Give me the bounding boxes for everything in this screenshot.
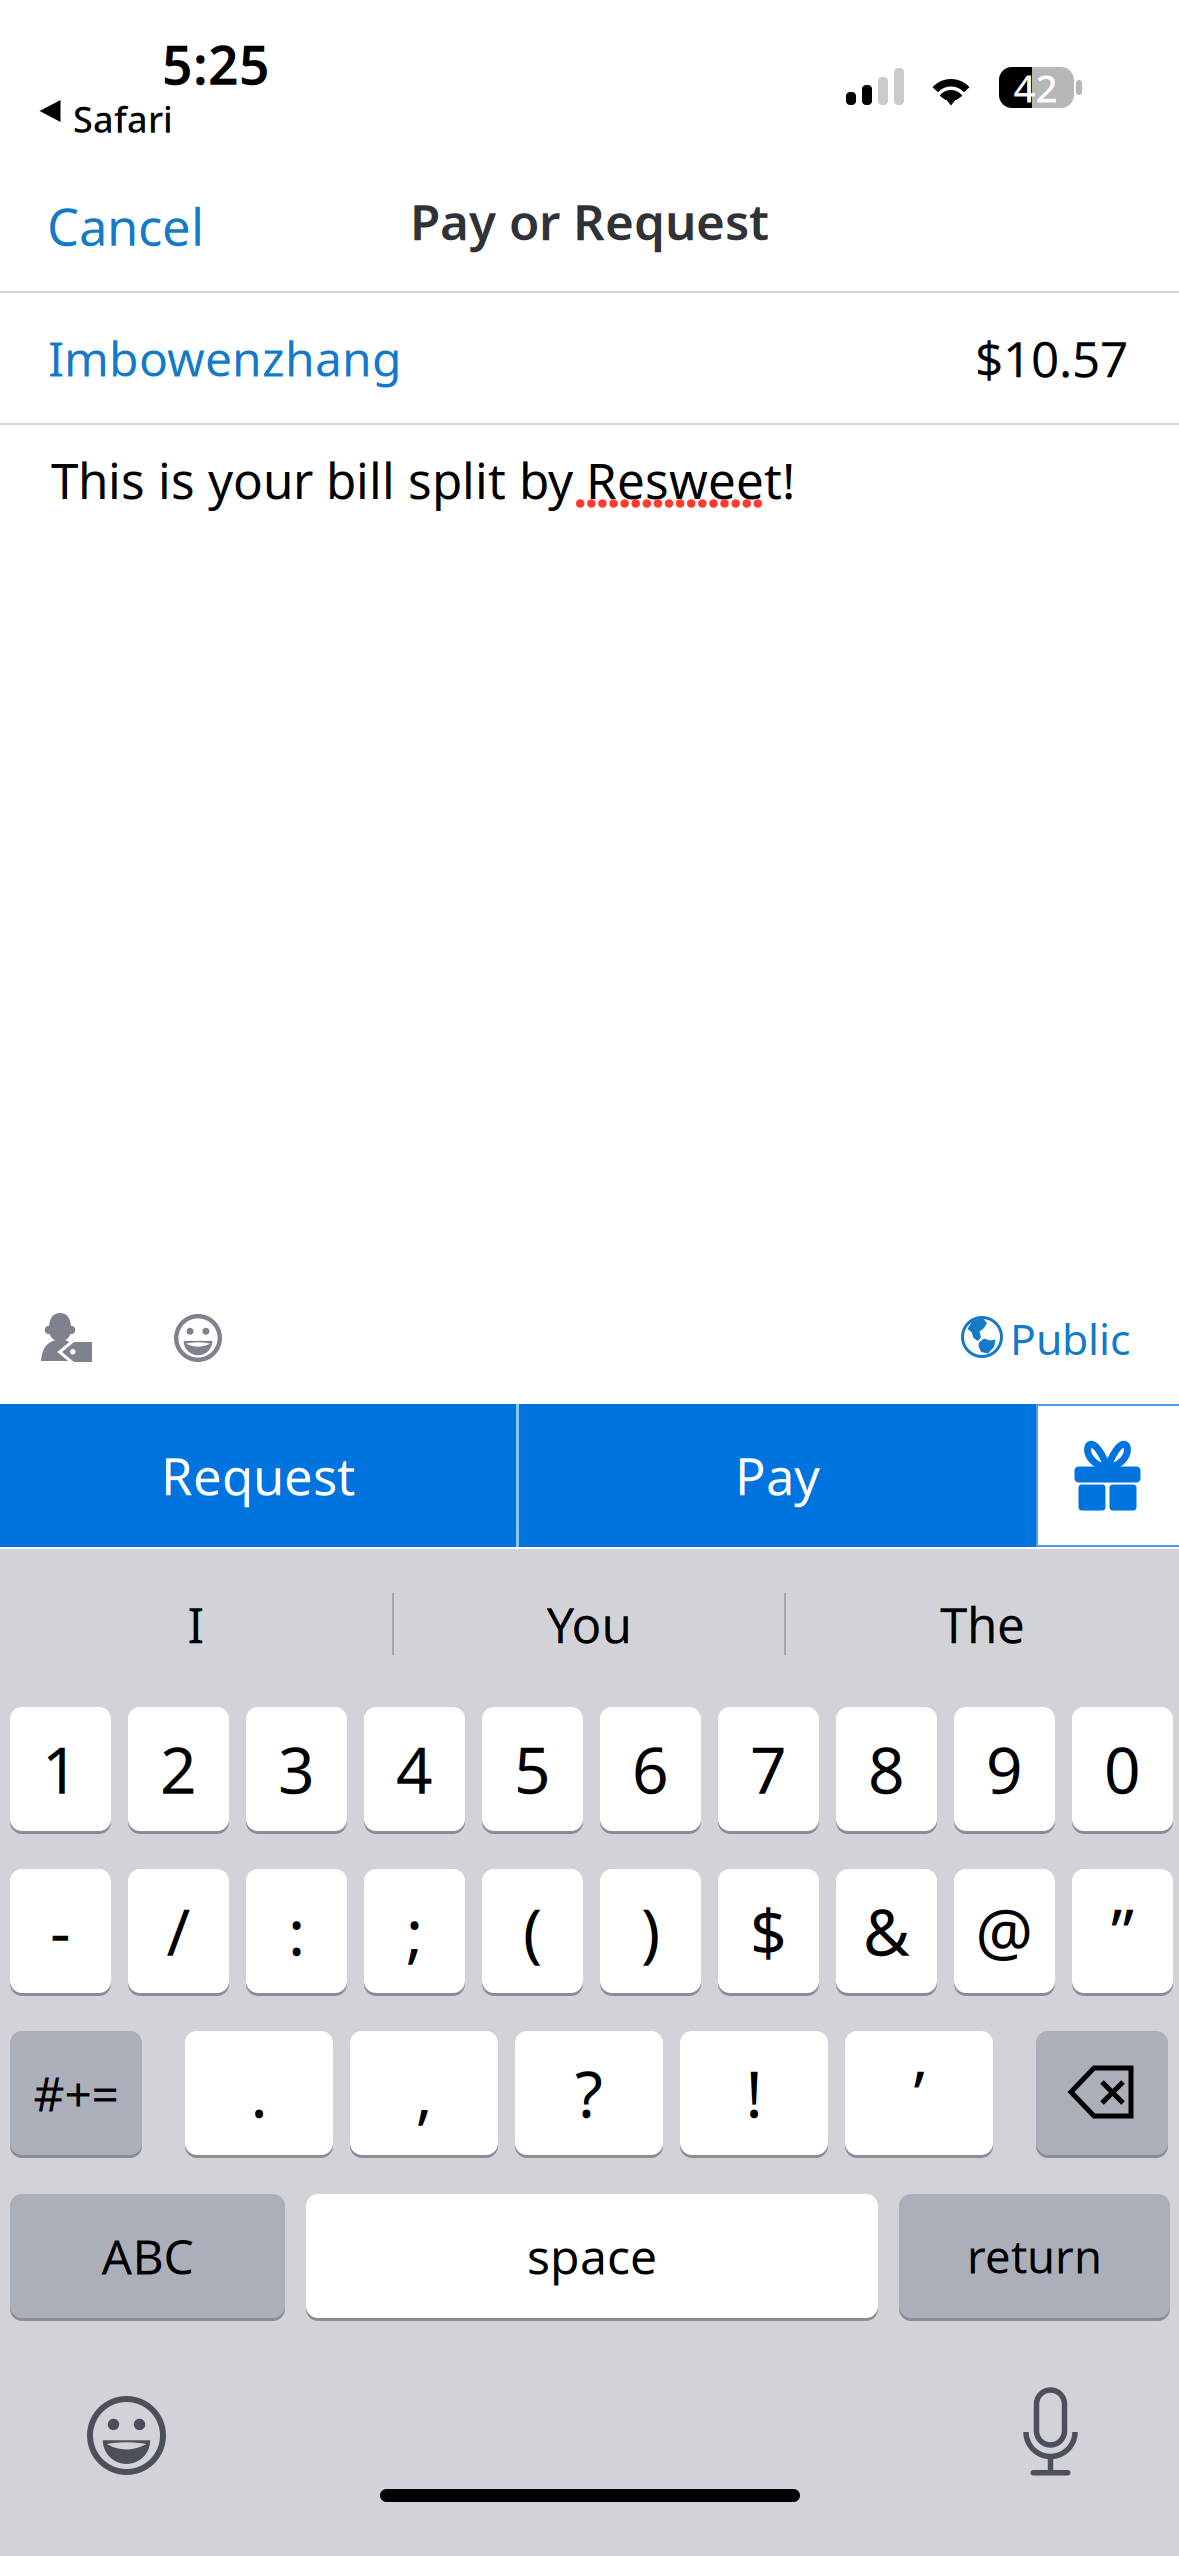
staticText: , bbox=[415, 2050, 432, 2135]
button[interactable]: 6 bbox=[600, 1707, 701, 1834]
staticText: ” bbox=[1111, 1888, 1134, 1973]
button[interactable]: ; bbox=[364, 1869, 465, 1996]
staticText: 5 bbox=[514, 1726, 551, 1811]
button[interactable]: 5 bbox=[482, 1707, 583, 1834]
staticText: The bbox=[940, 1591, 1025, 1657]
staticText: $10.57 bbox=[975, 325, 1128, 391]
button[interactable]: Gift bbox=[1036, 1404, 1179, 1547]
button[interactable]: @ bbox=[954, 1869, 1055, 1996]
staticText: 2 bbox=[160, 1726, 197, 1811]
staticText: ’ bbox=[913, 2050, 924, 2135]
staticText: / bbox=[166, 1888, 190, 1973]
staticText: Public bbox=[1010, 1310, 1130, 1367]
button[interactable]: Emoji bbox=[130, 1308, 250, 1404]
staticText: ; bbox=[406, 1888, 423, 1973]
button[interactable]: ’ bbox=[845, 2031, 993, 2158]
staticText: ABC bbox=[101, 2224, 193, 2288]
button[interactable]: Emoji keyboard bbox=[40, 2376, 190, 2496]
button[interactable]: 7 bbox=[718, 1707, 819, 1834]
button[interactable]: Add person bbox=[0, 1308, 130, 1404]
staticText: Imbowenzhang bbox=[48, 326, 402, 390]
button[interactable]: 8 bbox=[836, 1707, 937, 1834]
staticText: This is your bill split by Resweet! bbox=[51, 447, 795, 512]
button[interactable]: 1 bbox=[10, 1707, 111, 1834]
staticText: #+= bbox=[33, 2061, 118, 2125]
staticText: & bbox=[863, 1888, 910, 1973]
staticText: 4 bbox=[396, 1726, 433, 1811]
staticText: Safari bbox=[73, 95, 173, 143]
staticText: . bbox=[250, 2050, 267, 2135]
button[interactable]: Public bbox=[961, 1308, 1179, 1404]
button[interactable]: return bbox=[899, 2194, 1170, 2321]
staticText: 42 bbox=[1013, 62, 1057, 113]
staticText: 3 bbox=[278, 1726, 315, 1811]
staticText: ) bbox=[641, 1888, 660, 1973]
button[interactable]: 3 bbox=[246, 1707, 347, 1834]
staticText: 5:25 bbox=[162, 29, 270, 99]
button[interactable]: space bbox=[306, 2194, 878, 2321]
button[interactable]: . bbox=[185, 2031, 333, 2158]
staticText: $ bbox=[750, 1888, 787, 1973]
button[interactable]: Imbowenzhang bbox=[0, 293, 1179, 423]
button[interactable]: The bbox=[786, 1549, 1179, 1699]
staticText: 7 bbox=[750, 1726, 787, 1811]
staticText: Cancel bbox=[47, 192, 204, 260]
staticText: 1 bbox=[42, 1726, 79, 1811]
button[interactable]: : bbox=[246, 1869, 347, 1996]
staticText: ? bbox=[575, 2050, 603, 2135]
staticText: 8 bbox=[868, 1726, 905, 1811]
button[interactable]: 2 bbox=[128, 1707, 229, 1834]
button[interactable]: $ bbox=[718, 1869, 819, 1996]
button[interactable]: ? bbox=[515, 2031, 663, 2158]
staticText: 9 bbox=[986, 1726, 1023, 1811]
staticText: return bbox=[967, 2226, 1102, 2286]
button[interactable]: Dictation bbox=[975, 2374, 1125, 2494]
button[interactable]: Cancel bbox=[0, 160, 252, 292]
staticText: You bbox=[546, 1591, 631, 1657]
button[interactable]: Pay bbox=[519, 1404, 1036, 1547]
button[interactable]: #+= bbox=[10, 2031, 142, 2158]
staticText: 0 bbox=[1104, 1726, 1141, 1811]
button[interactable]: 0 bbox=[1072, 1707, 1173, 1834]
button[interactable]: , bbox=[350, 2031, 498, 2158]
button[interactable]: ” bbox=[1072, 1869, 1173, 1996]
staticText: @ bbox=[975, 1888, 1033, 1973]
staticText: 6 bbox=[632, 1726, 669, 1811]
button[interactable]: I bbox=[0, 1549, 392, 1699]
button[interactable]: - bbox=[10, 1869, 111, 1996]
button[interactable]: ! bbox=[680, 2031, 828, 2158]
button[interactable]: & bbox=[836, 1869, 937, 1996]
staticText: ( bbox=[523, 1888, 542, 1973]
button[interactable]: 9 bbox=[954, 1707, 1055, 1834]
button[interactable]: You bbox=[394, 1549, 784, 1699]
staticText: space bbox=[527, 2224, 657, 2288]
staticText: Pay or Request bbox=[410, 188, 769, 254]
staticText: Request bbox=[161, 1442, 355, 1509]
button[interactable]: ABC bbox=[10, 2194, 285, 2321]
button[interactable]: ) bbox=[600, 1869, 701, 1996]
staticText: I bbox=[187, 1591, 204, 1657]
button[interactable]: / bbox=[128, 1869, 229, 1996]
staticText: Pay bbox=[735, 1442, 820, 1509]
button[interactable]: ( bbox=[482, 1869, 583, 1996]
staticText: - bbox=[50, 1888, 71, 1973]
staticText: ! bbox=[745, 2050, 762, 2135]
button[interactable]: Request bbox=[0, 1404, 516, 1547]
staticText: : bbox=[288, 1888, 305, 1973]
button[interactable]: 4 bbox=[364, 1707, 465, 1834]
button[interactable]: Delete bbox=[1036, 2031, 1168, 2158]
